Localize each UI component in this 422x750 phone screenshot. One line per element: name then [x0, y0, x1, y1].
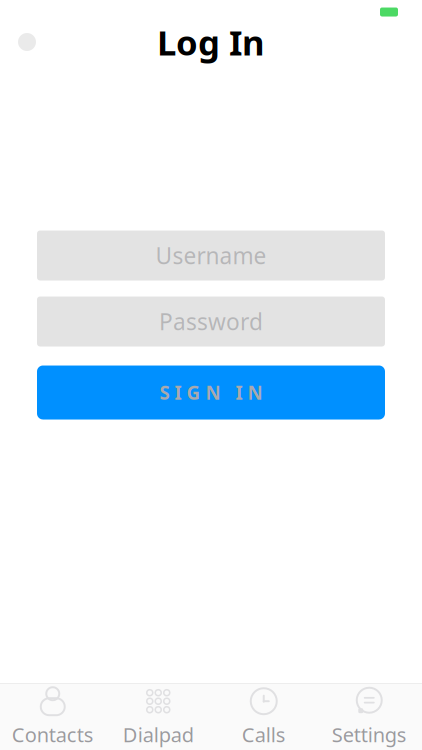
staticText: Password	[159, 306, 263, 336]
staticText: Log In	[157, 19, 265, 65]
staticText: Username	[155, 240, 266, 270]
button[interactable]: Dialpad	[105, 684, 211, 750]
button[interactable]: Settings	[316, 684, 422, 750]
button[interactable]: Username	[37, 230, 385, 280]
staticText: Contacts	[12, 721, 94, 748]
staticText: Settings	[332, 721, 407, 748]
staticText: Dialpad	[123, 721, 194, 748]
button[interactable]: Contacts	[0, 684, 105, 750]
button[interactable]: Password	[37, 296, 385, 346]
staticText: Calls	[242, 721, 286, 748]
button[interactable]: Back	[0, 21, 54, 63]
staticText: S I G N I N	[159, 380, 262, 405]
button[interactable]: S I G N I N	[37, 365, 385, 419]
button[interactable]: Calls	[211, 684, 316, 750]
